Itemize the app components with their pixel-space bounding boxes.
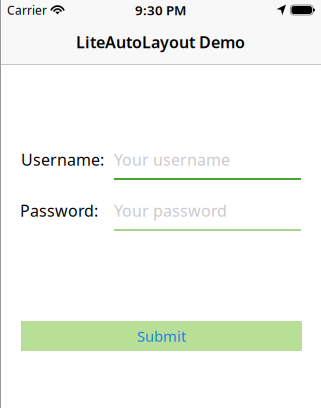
button[interactable]: Your password [114,200,301,231]
staticText: LiteAutoLayout Demo [76,31,245,53]
staticText: Carrier [7,2,47,18]
staticText: 9:30 PM [135,1,186,19]
staticText: Username: [21,149,104,170]
button[interactable]: Your username [114,149,301,180]
button[interactable]: Submit [21,321,302,351]
staticText: Your password [114,200,227,221]
staticText: Submit [137,326,186,346]
staticText: Password: [20,200,98,221]
staticText: Your username [114,149,230,170]
